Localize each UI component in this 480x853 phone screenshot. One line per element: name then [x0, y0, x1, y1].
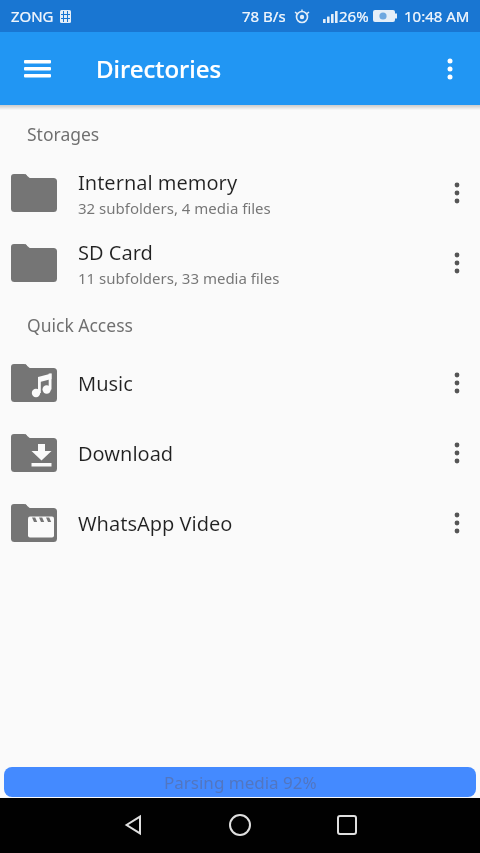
staticText: Directories [96, 52, 222, 85]
staticText: 78 B/s [242, 6, 286, 26]
staticText: 26% [339, 6, 369, 26]
button[interactable]: SD Card [0, 228, 480, 298]
staticText: 11 subfolders, 33 media files [78, 268, 280, 288]
button[interactable]: Internal memory [0, 158, 480, 228]
button[interactable]: Music [0, 348, 480, 418]
button[interactable] [320, 798, 374, 852]
staticText: Internal memory [78, 169, 238, 196]
staticText: 32 subfolders, 4 media files [78, 198, 271, 218]
button[interactable] [434, 360, 480, 406]
button[interactable] [434, 170, 480, 216]
button[interactable]: WhatsApp Video [0, 488, 480, 558]
button[interactable]: Parsing media 92% [4, 767, 476, 797]
staticText: Parsing media 92% [164, 771, 317, 794]
staticText: Storages [27, 122, 100, 146]
button[interactable] [106, 798, 160, 852]
staticText: Music [78, 370, 133, 397]
staticText: WhatsApp Video [78, 510, 233, 537]
button[interactable] [434, 500, 480, 546]
staticText: Quick Access [27, 313, 133, 337]
button[interactable] [434, 430, 480, 476]
button[interactable] [13, 45, 61, 93]
staticText: 10:48 AM [404, 6, 470, 26]
staticText: ZONG [11, 6, 54, 26]
staticText: SD Card [78, 239, 153, 266]
button[interactable] [428, 47, 472, 91]
button[interactable]: Download [0, 418, 480, 488]
button[interactable] [434, 240, 480, 286]
staticText: Download [78, 440, 174, 467]
button[interactable] [213, 798, 267, 852]
